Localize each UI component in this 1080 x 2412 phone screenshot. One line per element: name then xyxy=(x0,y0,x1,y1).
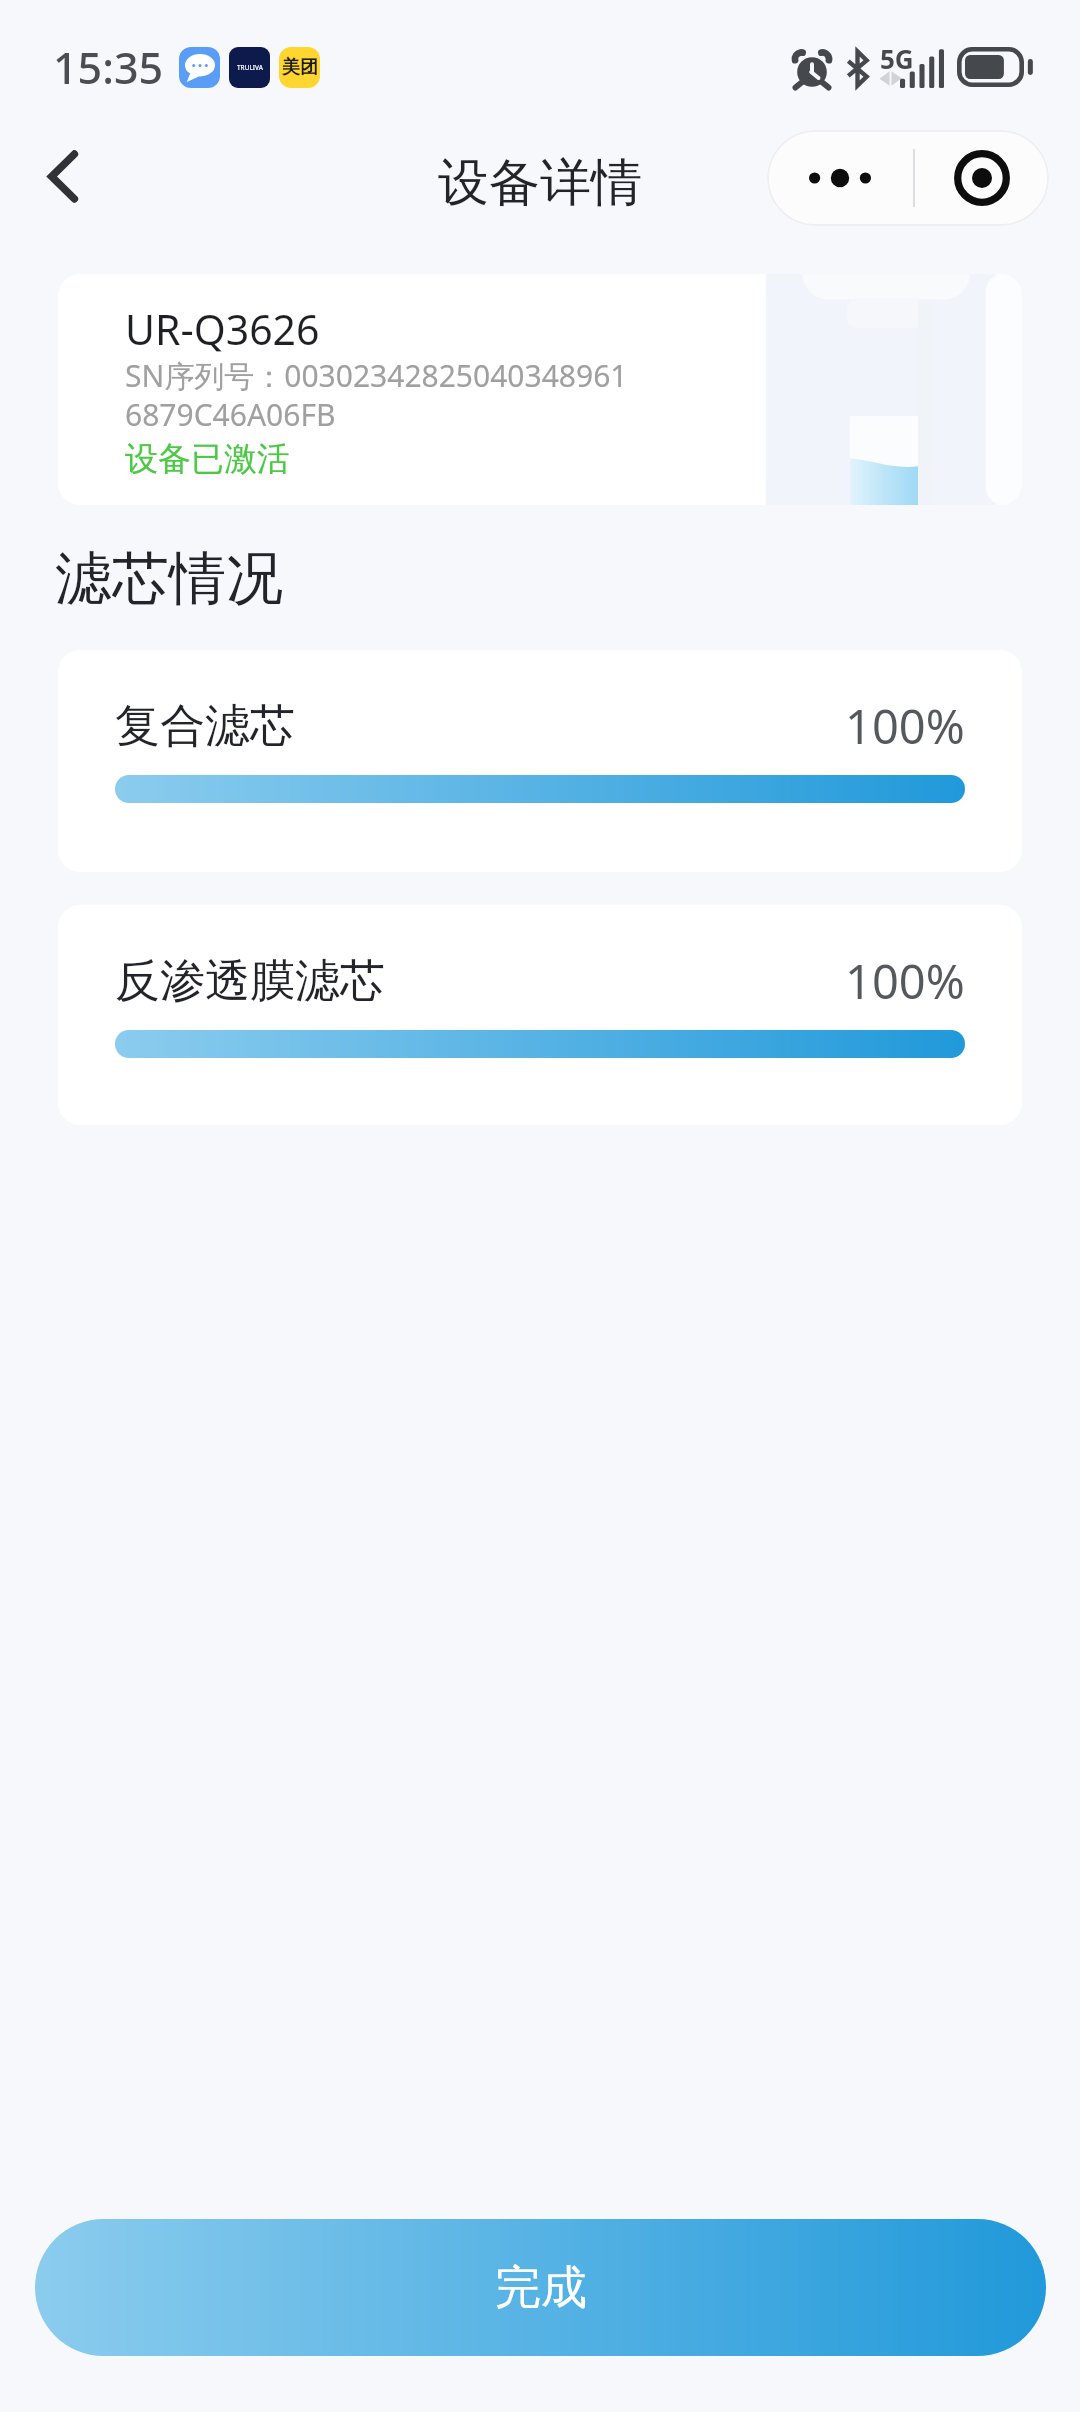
button[interactable]: Close mini program xyxy=(915,130,1049,226)
staticText: 15:35 xyxy=(53,38,164,97)
staticText: SN序列号：00302342825040348961 xyxy=(125,355,628,396)
staticText: 6879C46A06FB xyxy=(125,394,336,435)
staticText: 设备详情 xyxy=(438,151,642,215)
staticText: 美团 xyxy=(282,56,318,79)
staticText: UR-Q3626 xyxy=(125,301,320,357)
button[interactable]: Back xyxy=(15,128,111,224)
staticText: 完成 xyxy=(495,2259,587,2317)
staticText: 反渗透膜滤芯 xyxy=(115,953,385,1010)
staticText: 5G xyxy=(880,41,914,76)
button[interactable]: UR-Q3626 xyxy=(58,274,1022,505)
staticText: 复合滤芯 xyxy=(115,698,295,755)
staticText: 设备已激活 xyxy=(125,438,290,480)
button[interactable]: 复合滤芯 xyxy=(58,650,1022,872)
staticText: 100% xyxy=(845,949,965,1013)
staticText: 100% xyxy=(845,694,965,758)
button[interactable]: 完成 xyxy=(35,2219,1046,2356)
staticText: TRULIVA xyxy=(237,63,263,72)
button[interactable]: More options xyxy=(767,130,913,226)
button[interactable]: 反渗透膜滤芯 xyxy=(58,905,1022,1125)
staticText: 滤芯情况 xyxy=(55,543,283,615)
